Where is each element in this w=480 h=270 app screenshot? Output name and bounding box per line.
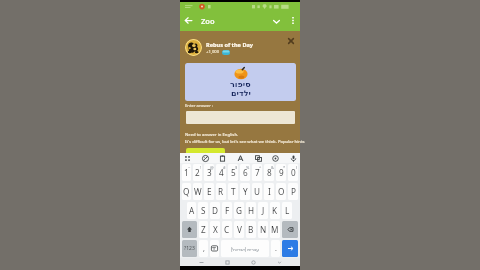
staticText: K <box>272 205 278 216</box>
button[interactable]: J <box>258 202 268 219</box>
staticText: X <box>213 224 218 235</box>
staticText: +1,000 <box>206 49 220 55</box>
staticText: 1 <box>184 167 189 178</box>
button[interactable]: M <box>270 221 280 238</box>
button[interactable]: ~ <box>182 164 191 181</box>
button[interactable]: X <box>210 221 220 238</box>
staticText: 7 <box>255 167 260 178</box>
staticText: ילדים <box>231 89 251 98</box>
button[interactable]: עברית (ישראל) <box>221 240 269 257</box>
button[interactable]: Back <box>181 13 196 28</box>
button[interactable]: Stickers <box>200 153 210 163</box>
button[interactable]: W <box>193 183 202 200</box>
button[interactable]: & <box>264 164 274 181</box>
button[interactable]: P <box>288 183 298 200</box>
staticText: R <box>218 186 224 197</box>
button[interactable]: Y <box>240 183 250 200</box>
staticText: S <box>201 205 206 216</box>
button[interactable]: # <box>216 164 226 181</box>
button[interactable]: Home <box>222 258 232 266</box>
button[interactable]: Expand <box>268 13 284 29</box>
button[interactable]: Hide keyboard <box>274 258 284 266</box>
staticText: ~ <box>188 165 191 170</box>
button[interactable]: Recents <box>248 258 258 266</box>
button[interactable] <box>186 148 225 153</box>
button[interactable]: Translate <box>253 153 263 163</box>
button[interactable]: Text <box>235 153 245 163</box>
staticText: 0 <box>291 167 296 178</box>
button[interactable]: D <box>210 202 220 219</box>
button[interactable]: . <box>271 240 280 257</box>
button[interactable]: G <box>234 202 244 219</box>
button[interactable]: H <box>246 202 256 219</box>
button[interactable]: Z <box>199 221 208 238</box>
staticText: Z <box>201 224 206 235</box>
button[interactable]: More options <box>286 14 299 27</box>
button[interactable]: Shift <box>182 221 197 238</box>
staticText: ?123 <box>184 245 195 252</box>
button[interactable]: Enter <box>282 240 298 257</box>
button[interactable]: A <box>187 202 196 219</box>
button[interactable]: Close <box>285 35 297 47</box>
button[interactable]: R <box>216 183 226 200</box>
button[interactable]: C <box>222 221 232 238</box>
staticText: Need to answer in English. <box>185 132 239 138</box>
staticText: N <box>260 224 267 235</box>
staticText: ( <box>296 165 298 170</box>
staticText: 5 <box>231 167 236 178</box>
staticText: W <box>194 186 202 197</box>
button[interactable]: V <box>234 221 244 238</box>
button[interactable]: % <box>240 164 250 181</box>
staticText: U <box>254 186 260 197</box>
staticText: # <box>223 165 226 170</box>
staticText: % <box>246 165 250 170</box>
staticText: 2 <box>195 167 200 178</box>
button[interactable]: Change language <box>210 240 219 257</box>
staticText: D <box>212 205 218 216</box>
button[interactable]: I <box>264 183 274 200</box>
staticText: 3 <box>207 167 212 178</box>
button[interactable]: Clipboard <box>217 153 227 163</box>
button[interactable]: N <box>258 221 268 238</box>
button[interactable]: @ <box>204 164 214 181</box>
staticText: Rebus of the Day <box>206 41 254 49</box>
staticText: B <box>248 224 254 235</box>
staticText: M <box>271 224 279 235</box>
staticText: T <box>231 186 236 197</box>
button[interactable]: E <box>204 183 214 200</box>
button[interactable]: ^ <box>252 164 262 181</box>
button[interactable]: $ <box>228 164 238 181</box>
staticText: F <box>225 205 230 216</box>
button[interactable]: Q <box>182 183 191 200</box>
button[interactable]: L <box>282 202 292 219</box>
staticText: O <box>278 186 285 197</box>
button[interactable]: ! <box>193 164 202 181</box>
button[interactable]: U <box>252 183 262 200</box>
staticText: Y <box>243 186 248 197</box>
staticText: It's difficult for us, but let's see wha… <box>185 139 305 145</box>
staticText: . <box>275 244 277 254</box>
button[interactable]: Apps <box>182 153 192 163</box>
staticText: @ <box>210 165 214 170</box>
staticText: עברית (ישראל) <box>231 246 260 252</box>
button[interactable]: T <box>228 183 238 200</box>
button[interactable]: Backspace <box>282 221 298 238</box>
button[interactable]: K <box>270 202 280 219</box>
button[interactable]: Voice input <box>288 153 298 163</box>
button[interactable]: Settings <box>270 153 280 163</box>
button[interactable]: , <box>199 240 208 257</box>
staticText: 4 <box>219 167 224 178</box>
button[interactable]: ( <box>288 164 298 181</box>
staticText: $ <box>235 165 238 170</box>
button[interactable]: B <box>246 221 256 238</box>
staticText: 6 <box>243 167 248 178</box>
staticText: A <box>189 205 195 216</box>
button[interactable]: ?123 <box>182 240 197 257</box>
staticText: E <box>207 186 212 197</box>
button[interactable]: Menu <box>196 258 206 266</box>
button[interactable]: S <box>198 202 208 219</box>
button[interactable]: F <box>222 202 232 219</box>
button[interactable]: O <box>276 183 286 200</box>
button[interactable]: * <box>276 164 286 181</box>
